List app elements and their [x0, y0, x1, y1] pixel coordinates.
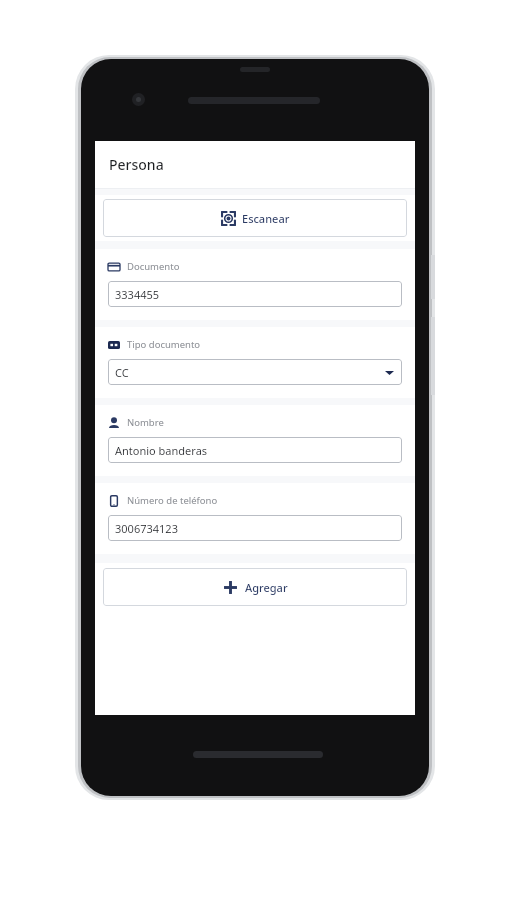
button[interactable]: Escanear: [103, 199, 407, 237]
staticText: Número de teléfono: [127, 494, 218, 507]
staticText: CC: [115, 365, 129, 380]
staticText: Nombre: [127, 416, 164, 429]
button[interactable]: Tipo documento: [95, 327, 415, 398]
staticText: 3334455: [115, 287, 160, 302]
button[interactable]: Documento: [95, 249, 415, 320]
other: Escanear: [221, 211, 236, 226]
staticText: Escanear: [242, 211, 290, 226]
staticText: Tipo documento: [127, 338, 201, 351]
button[interactable]: Nombre: [95, 405, 415, 476]
button[interactable]: Agregar: [103, 568, 407, 606]
other: Agregar: [222, 579, 239, 596]
staticText: Antonio banderas: [115, 443, 208, 458]
staticText: 3006734123: [115, 521, 178, 536]
staticText: Persona: [109, 155, 164, 174]
button[interactable]: Número de teléfono: [95, 483, 415, 554]
staticText: Agregar: [245, 580, 288, 595]
staticText: Documento: [127, 260, 180, 273]
